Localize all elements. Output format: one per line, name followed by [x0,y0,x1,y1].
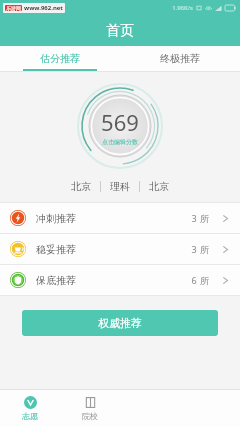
staticText: 3 [191,212,197,224]
staticText: 3 [191,243,197,255]
button[interactable]: 终极推荐 [120,46,240,71]
button[interactable]: 冲刺推荐 [0,203,240,233]
staticText: 权威推荐 [98,316,142,330]
staticText: 北京 [71,180,91,193]
staticText: 终极推荐 [160,52,200,65]
button[interactable]: 稳妥推荐 [0,234,240,264]
staticText: 理科 [110,180,130,193]
staticText: 所 [200,275,209,286]
staticText: 点击编辑分数 [102,138,138,146]
staticText: 所 [200,244,209,255]
staticText: 保底推荐 [36,274,76,287]
button[interactable]: 权威推荐 [22,310,218,336]
staticText: 569 [101,107,139,137]
staticText: 乐游网 [6,5,21,11]
staticText: www.962.net [24,4,63,12]
staticText: 1.96K/s [172,4,193,12]
staticText: 院校 [82,411,98,421]
staticText: 所 [200,213,209,224]
button[interactable]: 北京 [0,176,240,196]
staticText: 估分推荐 [40,52,80,65]
button[interactable]: 院校 [60,390,120,427]
staticText: 稳妥推荐 [36,243,76,256]
staticText: 冲刺推荐 [36,212,76,225]
staticText: 6 [191,274,197,286]
staticText: 北京 [149,180,169,193]
staticText: 首页 [106,22,134,40]
button[interactable]: 保底推荐 [0,265,240,295]
staticText: 志愿 [22,411,38,421]
button[interactable]: 点击编辑分数 [77,83,163,169]
button[interactable]: 估分推荐 [0,46,120,71]
button[interactable]: 志愿 [0,390,60,427]
